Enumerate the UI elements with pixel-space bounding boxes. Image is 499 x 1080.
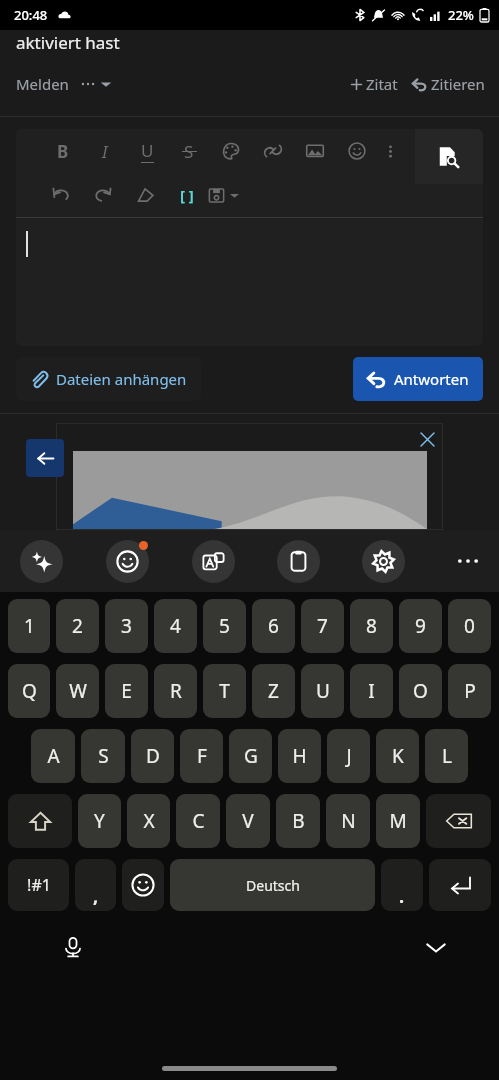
button[interactable]: I xyxy=(350,664,393,718)
button[interactable]: , xyxy=(75,859,116,911)
button[interactable]: S xyxy=(168,136,210,166)
button[interactable]: 9 xyxy=(399,599,442,653)
staticText: O xyxy=(413,678,428,704)
button[interactable]: E xyxy=(105,664,148,718)
button[interactable]: U xyxy=(301,664,344,718)
button[interactable]: KI-Vorschläge xyxy=(20,540,63,583)
button[interactable]: N xyxy=(326,794,370,848)
button[interactable]: Y xyxy=(78,794,121,848)
button[interactable]: K xyxy=(376,729,419,783)
staticText: Antworten xyxy=(394,369,469,389)
button[interactable]: F xyxy=(180,729,223,783)
button[interactable]: 2 xyxy=(56,599,99,653)
button[interactable]: P xyxy=(448,664,491,718)
button[interactable]: V xyxy=(226,794,270,848)
button[interactable]: A xyxy=(31,729,75,783)
button[interactable] xyxy=(16,218,483,346)
staticText: Zitat xyxy=(366,74,398,94)
button[interactable]: Rückgängig xyxy=(40,180,82,210)
button[interactable]: W xyxy=(56,664,99,718)
button[interactable]: Einstellungen xyxy=(362,540,405,583)
staticText: S xyxy=(98,743,109,769)
staticText: !#1 xyxy=(27,874,51,896)
button[interactable]: D xyxy=(131,729,174,783)
staticText: Q xyxy=(22,678,37,704)
staticText: I xyxy=(368,678,375,704)
button[interactable]: Code xyxy=(166,180,208,210)
button[interactable]: Zurück xyxy=(26,439,64,477)
button[interactable]: Deutsch xyxy=(170,859,375,911)
button[interactable]: R xyxy=(154,664,197,718)
staticText: R xyxy=(170,678,182,704)
button[interactable]: 4 xyxy=(154,599,197,653)
button[interactable]: Emoji xyxy=(122,859,164,911)
button[interactable]: Mehr xyxy=(447,540,489,582)
button[interactable]: Zitat xyxy=(350,74,398,94)
button[interactable]: H xyxy=(278,729,321,783)
button[interactable]: T xyxy=(203,664,246,718)
button[interactable]: Löschen xyxy=(124,180,166,210)
button[interactable]: Emoji xyxy=(106,540,149,583)
button[interactable]: Dateien anhängen xyxy=(16,357,201,401)
button[interactable]: Melden xyxy=(16,74,112,94)
button[interactable]: Q xyxy=(8,664,50,718)
button[interactable]: 3 xyxy=(105,599,148,653)
button[interactable]: 8 xyxy=(350,599,393,653)
button[interactable]: Zwischenablage xyxy=(277,540,320,583)
button[interactable]: Emoji xyxy=(336,136,378,166)
button[interactable]: Vorschau xyxy=(415,129,483,184)
staticText: U xyxy=(316,678,330,704)
staticText: H xyxy=(292,743,307,769)
button[interactable]: Link xyxy=(252,136,294,166)
button[interactable]: J xyxy=(327,729,370,783)
staticText: 0 xyxy=(464,613,475,639)
staticText: Z xyxy=(268,678,279,704)
button[interactable]: 1 xyxy=(8,599,50,653)
button[interactable]: Z xyxy=(252,664,295,718)
button[interactable]: X xyxy=(127,794,170,848)
button[interactable]: Tastatur schließen xyxy=(419,930,453,964)
button[interactable]: . xyxy=(381,859,423,911)
button[interactable]: Löschen xyxy=(426,794,491,848)
staticText: D xyxy=(146,743,160,769)
button[interactable]: Bild xyxy=(294,136,336,166)
button[interactable]: 0 xyxy=(448,599,491,653)
button[interactable]: Entfernen xyxy=(412,424,442,454)
button[interactable]: L xyxy=(425,729,468,783)
staticText: U xyxy=(141,139,154,162)
button[interactable]: O xyxy=(399,664,442,718)
button[interactable]: Zitieren xyxy=(412,74,485,94)
staticText: 22% xyxy=(448,6,474,24)
button[interactable]: Farbe xyxy=(210,136,252,166)
button[interactable]: !#1 xyxy=(8,859,69,911)
button[interactable]: Antworten xyxy=(353,357,483,401)
button[interactable]: Mehr xyxy=(378,136,402,166)
staticText: 20:48 xyxy=(14,6,48,24)
button[interactable]: I xyxy=(84,136,126,166)
staticText: 7 xyxy=(317,613,328,639)
staticText: 1 xyxy=(24,613,35,639)
button[interactable]: 5 xyxy=(203,599,246,653)
button[interactable]: Umschalt xyxy=(8,794,72,848)
button[interactable]: B xyxy=(42,136,84,166)
staticText: S xyxy=(184,140,194,163)
staticText: L xyxy=(442,743,452,769)
button[interactable]: Speichern xyxy=(208,187,239,204)
staticText: 6 xyxy=(268,613,279,639)
button[interactable]: Wiederholen xyxy=(82,180,124,210)
button[interactable]: S xyxy=(81,729,125,783)
button[interactable]: Spracheingabe xyxy=(56,930,90,964)
button[interactable]: G xyxy=(229,729,272,783)
staticText: 9 xyxy=(415,613,426,639)
staticText: M xyxy=(389,808,407,834)
button[interactable]: Eingabe xyxy=(429,859,491,911)
button[interactable]: M xyxy=(376,794,420,848)
button[interactable]: U xyxy=(126,136,168,166)
button[interactable]: C xyxy=(176,794,220,848)
staticText: F xyxy=(197,743,207,769)
button[interactable]: Übersetzen xyxy=(192,540,235,583)
button[interactable]: B xyxy=(276,794,320,848)
button[interactable]: 6 xyxy=(252,599,295,653)
button[interactable]: 7 xyxy=(301,599,344,653)
staticText: E xyxy=(121,678,132,704)
